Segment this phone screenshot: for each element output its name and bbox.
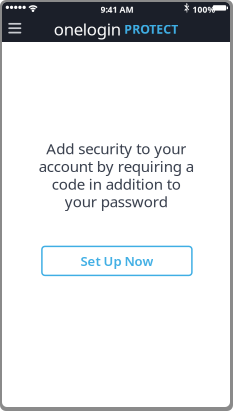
staticText: 9:41 AM — [100, 3, 133, 15]
staticText: 100% — [193, 4, 216, 15]
staticText: PROTECT — [124, 21, 178, 37]
button[interactable]: Set Up Now — [42, 246, 192, 275]
staticText: Set Up Now — [80, 252, 153, 270]
staticText: Add security to your account by requirin… — [38, 140, 193, 210]
button[interactable]: Menu — [2, 16, 28, 40]
staticText: onelogin — [54, 18, 121, 40]
